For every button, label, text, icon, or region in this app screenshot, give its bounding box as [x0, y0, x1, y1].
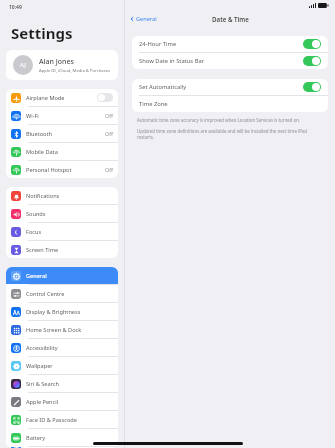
staticText: General — [136, 15, 157, 23]
staticText: Sounds — [26, 210, 46, 218]
button[interactable]: Privacy — [6, 447, 118, 448]
button[interactable]: AJ — [6, 50, 118, 80]
staticText: Siri & Search — [26, 380, 59, 388]
staticText: Personal Hotspot — [26, 166, 72, 174]
staticText: Focus — [26, 228, 42, 236]
staticText: Face ID & Passcode — [26, 416, 77, 424]
staticText: Show Date in Status Bar — [139, 57, 205, 65]
staticText: Off — [105, 130, 113, 137]
button[interactable]: Notifications — [6, 187, 118, 204]
staticText: Time Zone — [139, 100, 168, 108]
staticText: Off — [105, 112, 113, 119]
staticText: Battery — [26, 434, 46, 442]
staticText: Alan Jones — [39, 57, 74, 67]
button[interactable]: Battery — [6, 429, 118, 446]
button[interactable]: Time Zone — [132, 96, 328, 112]
staticText: Wallpaper — [26, 362, 53, 370]
staticText: Bluetooth — [26, 130, 52, 138]
staticText: Automatic time zone accuracy is improved… — [137, 117, 301, 123]
staticText: Set Automatically — [139, 83, 187, 91]
staticText: Accessibility — [26, 344, 58, 352]
button[interactable]: 24-Hour Time — [132, 36, 328, 52]
staticText: AJ — [20, 61, 26, 69]
button[interactable]: Control Centre — [6, 285, 118, 302]
button[interactable]: On — [303, 56, 321, 66]
staticText: Notifications — [26, 192, 60, 200]
button[interactable]: Mobile Data — [6, 143, 118, 160]
button[interactable]: Accessibility — [6, 339, 118, 356]
staticText: Apple Pencil — [26, 398, 59, 406]
staticText: General — [26, 272, 47, 280]
staticText: Home Screen & Dock — [26, 326, 82, 334]
staticText: Wi-Fi — [26, 112, 39, 120]
staticText: Control Centre — [26, 290, 65, 298]
button[interactable]: Sounds — [6, 205, 118, 222]
button[interactable]: General — [125, 13, 161, 25]
button[interactable]: Personal Hotspot — [6, 161, 118, 178]
staticText: Apple ID, iCloud, Media & Purchases — [39, 68, 111, 74]
button[interactable]: Face ID & Passcode — [6, 411, 118, 428]
button[interactable]: Apple Pencil — [6, 393, 118, 410]
staticText: Screen Time — [26, 246, 59, 254]
button[interactable]: General — [6, 267, 118, 284]
staticText: 10:49 — [9, 4, 22, 11]
button[interactable]: On — [303, 39, 321, 49]
button[interactable]: Set Automatically — [132, 79, 328, 95]
button[interactable]: Display & Brightness — [6, 303, 118, 320]
staticText: Mobile Data — [26, 148, 58, 156]
button[interactable]: Siri & Search — [6, 375, 118, 392]
staticText: Date & Time — [212, 15, 249, 23]
button[interactable]: Wallpaper — [6, 357, 118, 374]
staticText: 24-Hour Time — [139, 40, 177, 48]
button[interactable]: Screen Time — [6, 241, 118, 258]
button[interactable]: Wi-Fi — [6, 107, 118, 124]
button[interactable]: Focus — [6, 223, 118, 240]
staticText: Updated time zone definitions are availa… — [137, 128, 325, 140]
staticText: Off — [105, 166, 113, 173]
staticText: Settings — [11, 23, 73, 43]
button[interactable]: Home Screen & Dock — [6, 321, 118, 338]
button[interactable]: Show Date in Status Bar — [132, 53, 328, 69]
staticText: Airplane Mode — [26, 94, 65, 102]
button[interactable]: Airplane Mode — [6, 89, 118, 106]
button[interactable]: On — [303, 82, 321, 92]
button[interactable]: Off — [97, 93, 113, 102]
button[interactable]: Bluetooth — [6, 125, 118, 142]
staticText: Display & Brightness — [26, 308, 81, 316]
